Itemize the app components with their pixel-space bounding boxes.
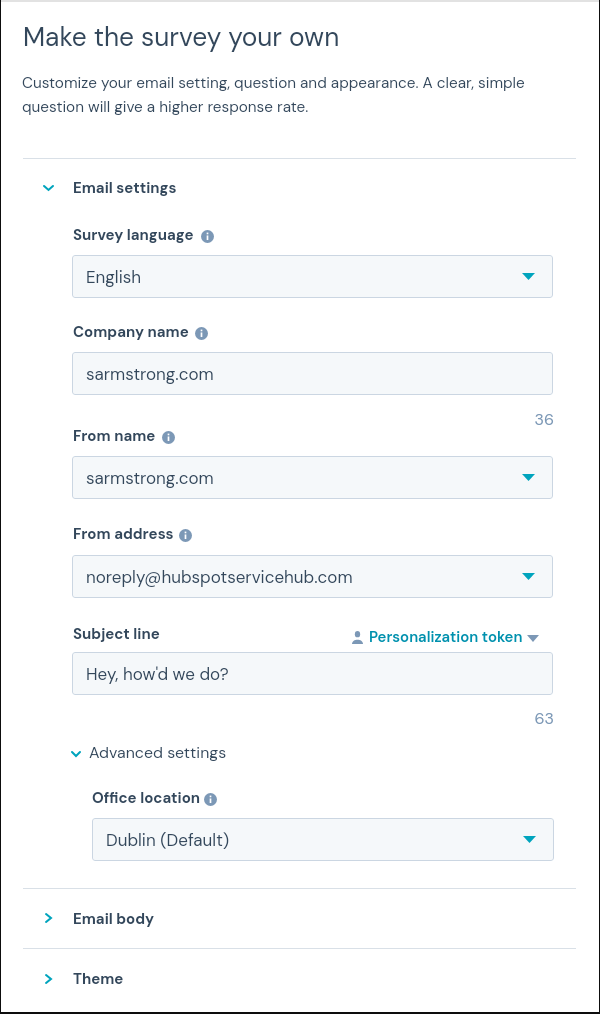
staticText: Office location [92,788,201,808]
button[interactable]: Dublin (Default) [92,818,554,861]
staticText: noreply@hubspotservicehub.com [86,566,353,588]
staticText: Theme [73,969,124,989]
button[interactable]: sarmstrong.com [72,456,553,499]
staticText: Make the survey your own [23,20,340,54]
button[interactable]: Hey, how'd we do? [72,652,553,695]
staticText: Advanced settings [89,742,227,763]
button[interactable]: English [72,255,553,298]
staticText: Email body [73,909,155,929]
staticText: 63 [0,708,554,729]
staticText: Company name [73,322,189,342]
staticText: Survey language [73,225,194,245]
button[interactable] [23,949,576,1008]
staticText: From name [73,426,156,446]
button[interactable] [348,626,542,648]
staticText: Hey, how'd we do? [86,663,229,685]
staticText: sarmstrong.com [86,467,214,489]
button[interactable]: sarmstrong.com [72,352,553,395]
staticText: Personalization token [369,627,523,646]
staticText: Email settings [73,178,177,198]
staticText: Subject line [73,624,160,644]
button[interactable]: noreply@hubspotservicehub.com [72,555,553,598]
staticText: Dublin (Default) [106,829,230,851]
button[interactable] [64,738,234,768]
button[interactable] [36,172,206,204]
staticText: sarmstrong.com [86,363,214,385]
staticText: From address [73,524,174,544]
staticText: English [86,266,142,288]
staticText: 36 [0,409,554,430]
button[interactable] [23,889,576,948]
staticText: Customize your email setting, question a… [22,73,550,116]
